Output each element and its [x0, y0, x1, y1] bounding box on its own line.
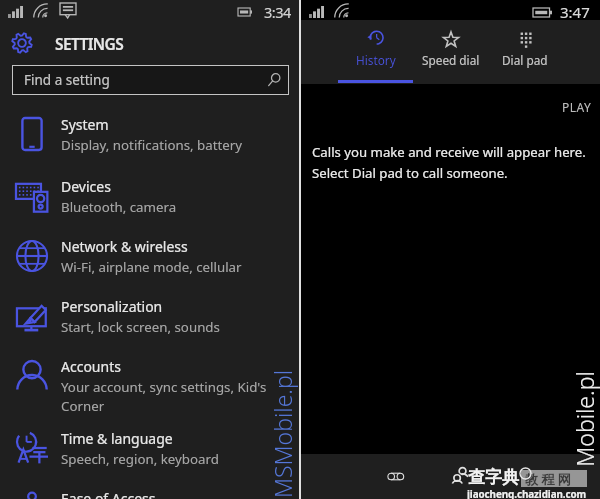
staticText: Network & wireless: [61, 237, 188, 256]
staticText: 3:34: [264, 2, 291, 22]
button[interactable]: Network & wireless: [0, 227, 299, 285]
button[interactable]: Personalization: [0, 287, 299, 345]
button[interactable]: Ease of Access: [0, 479, 299, 499]
staticText: Your account, sync settings, Kid's Corne…: [61, 378, 267, 415]
staticText: Start, lock screen, sounds: [61, 318, 220, 336]
staticText: MSMobile.pl: [267, 314, 298, 499]
button[interactable]: Speed dial: [413, 20, 488, 80]
staticText: History: [356, 52, 396, 68]
button[interactable]: System: [0, 105, 299, 163]
staticText: Personalization: [61, 297, 163, 316]
button[interactable]: Dial pad: [487, 20, 562, 80]
button[interactable]: Contacts: [442, 459, 478, 493]
staticText: Mobile.pl: [569, 299, 600, 499]
staticText: 查字典: [468, 467, 519, 488]
staticText: 教 程 网: [525, 470, 571, 488]
staticText: Accounts: [61, 357, 121, 376]
staticText: Ease of Access: [61, 489, 156, 499]
button[interactable]: Voicemail: [376, 462, 416, 492]
staticText: Find a setting: [24, 71, 110, 89]
button[interactable]: Find a setting: [13, 66, 288, 94]
staticText: SETTINGS: [55, 33, 124, 54]
button[interactable]: History: [338, 20, 413, 80]
staticText: Display, notifications, battery: [61, 136, 243, 154]
staticText: jiaocheng.chazidian.com: [467, 487, 587, 499]
button[interactable]: Devices: [0, 167, 299, 225]
button[interactable]: Accounts: [0, 347, 299, 405]
staticText: 3:47: [560, 2, 590, 22]
staticText: Devices: [61, 177, 111, 196]
staticText: Speech, region, keyboard: [61, 450, 219, 468]
staticText: Calls you make and receive will appear h…: [312, 143, 586, 182]
staticText: System: [61, 115, 109, 134]
staticText: Bluetooth, camera: [61, 198, 177, 216]
button[interactable]: Settings: [11, 32, 33, 54]
staticText: Time & language: [61, 429, 173, 448]
staticText: Speed dial: [422, 52, 480, 68]
button[interactable]: Time & language: [0, 419, 299, 477]
staticText: PLAY: [562, 99, 592, 115]
staticText: Dial pad: [502, 52, 548, 68]
staticText: Wi-Fi, airplane mode, cellular: [61, 258, 242, 276]
